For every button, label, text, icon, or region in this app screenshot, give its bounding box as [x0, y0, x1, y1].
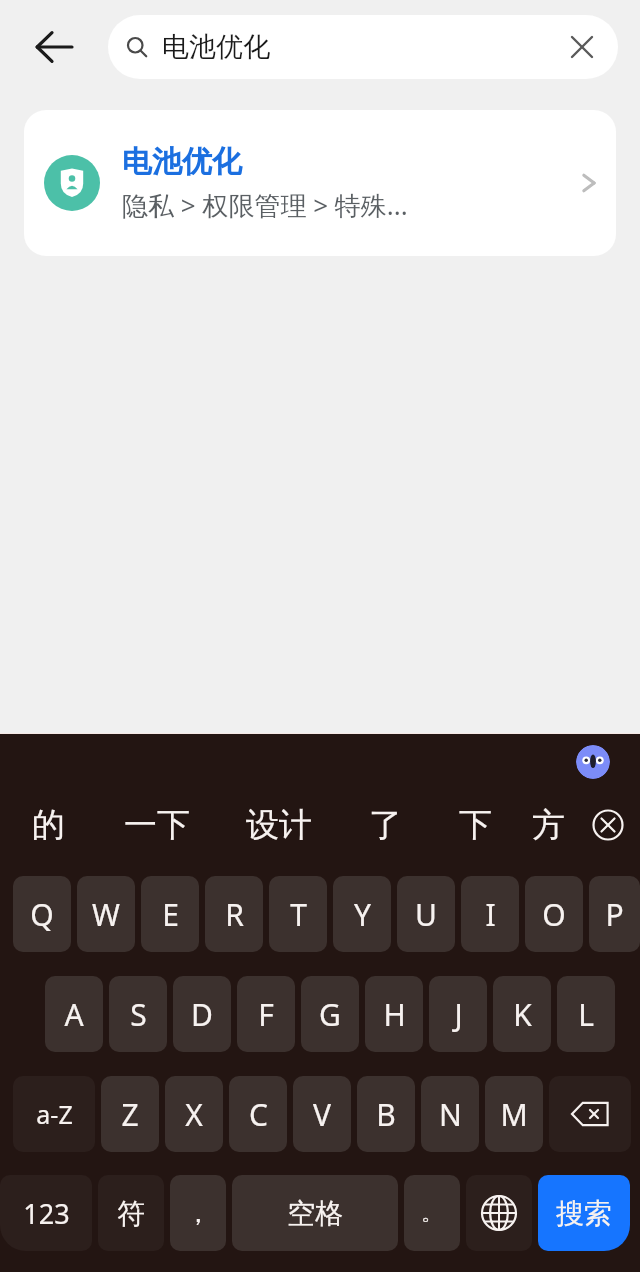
staticText: K	[513, 994, 532, 1035]
button[interactable]: Q	[13, 876, 71, 952]
staticText: 符	[117, 1196, 145, 1231]
staticText: 电池优化	[122, 143, 242, 181]
button[interactable]: a-Z	[13, 1076, 95, 1152]
button[interactable]: 符	[98, 1175, 164, 1251]
staticText: 123	[23, 1195, 70, 1232]
staticText: 设计	[246, 804, 312, 846]
button[interactable]: H	[365, 976, 423, 1052]
staticText: 空格	[287, 1196, 343, 1231]
button[interactable]: J	[429, 976, 487, 1052]
button[interactable]: 空格	[232, 1175, 398, 1251]
staticText: S	[130, 994, 147, 1035]
staticText: 下	[459, 804, 492, 846]
staticText: G	[319, 994, 341, 1035]
button[interactable]: C	[229, 1076, 287, 1152]
staticText: Z	[121, 1094, 139, 1135]
staticText: E	[162, 894, 179, 935]
button[interactable]: T	[269, 876, 327, 952]
staticText: H	[383, 994, 406, 1035]
staticText: 搜索	[556, 1196, 612, 1231]
button[interactable]: O	[525, 876, 583, 952]
button[interactable]: Z	[101, 1076, 159, 1152]
staticText: Q	[30, 894, 54, 935]
button[interactable]: Back	[22, 15, 86, 79]
staticText: a-Z	[36, 1097, 73, 1131]
staticText: X	[185, 1094, 203, 1135]
button[interactable]: 搜索	[538, 1175, 630, 1251]
button[interactable]: 设计	[218, 786, 340, 864]
button[interactable]: Switch language	[466, 1175, 532, 1251]
staticText: N	[439, 1094, 462, 1135]
button[interactable]: R	[205, 876, 263, 952]
button[interactable]: 123	[0, 1175, 92, 1251]
staticText: 电池优化	[162, 30, 554, 64]
button[interactable]: ，	[170, 1175, 226, 1251]
button[interactable]: P	[589, 876, 640, 952]
staticText: 隐私 > 权限管理 > 特殊...	[122, 187, 408, 223]
staticText: C	[249, 1094, 268, 1135]
button[interactable]: Clear	[554, 19, 610, 75]
button[interactable]: 方	[520, 786, 576, 864]
staticText: 的	[32, 804, 65, 846]
button[interactable]: Y	[333, 876, 391, 952]
button[interactable]: M	[485, 1076, 543, 1152]
button[interactable]: D	[173, 976, 231, 1052]
staticText: V	[313, 1094, 331, 1135]
button[interactable]: Input method avatar	[576, 745, 610, 779]
button[interactable]: N	[421, 1076, 479, 1152]
staticText: M	[500, 1094, 528, 1135]
button[interactable]: V	[293, 1076, 351, 1152]
staticText: W	[92, 894, 120, 935]
staticText: U	[415, 894, 437, 935]
staticText: 一下	[124, 804, 190, 846]
button[interactable]: Backspace	[549, 1076, 631, 1152]
button[interactable]: 。	[404, 1175, 460, 1251]
staticText: F	[258, 994, 274, 1035]
button[interactable]: U	[397, 876, 455, 952]
staticText: ，	[185, 1197, 211, 1230]
button[interactable]: 电池优化	[24, 110, 616, 256]
staticText: A	[64, 994, 84, 1035]
staticText: O	[542, 894, 566, 935]
button[interactable]: 一下	[96, 786, 218, 864]
button[interactable]: F	[237, 976, 295, 1052]
button[interactable]: L	[557, 976, 615, 1052]
staticText: B	[376, 1094, 396, 1135]
button[interactable]: Close candidates	[576, 786, 640, 864]
button[interactable]: K	[493, 976, 551, 1052]
button[interactable]: X	[165, 1076, 223, 1152]
button[interactable]: 的	[0, 786, 96, 864]
button[interactable]: S	[109, 976, 167, 1052]
button[interactable]: 下	[430, 786, 520, 864]
staticText: P	[605, 894, 624, 935]
staticText: 了	[369, 804, 402, 846]
button[interactable]: A	[45, 976, 103, 1052]
staticText: T	[290, 894, 307, 935]
staticText: L	[578, 994, 594, 1035]
button[interactable]: W	[77, 876, 135, 952]
staticText: R	[225, 894, 244, 935]
button[interactable]: 电池优化	[108, 15, 618, 79]
button[interactable]: 了	[340, 786, 430, 864]
button[interactable]: E	[141, 876, 199, 952]
staticText: J	[454, 994, 463, 1035]
staticText: 方	[532, 804, 565, 846]
staticText: D	[191, 994, 213, 1035]
button[interactable]: G	[301, 976, 359, 1052]
button[interactable]: B	[357, 1076, 415, 1152]
staticText: 。	[421, 1199, 443, 1227]
staticText: I	[485, 894, 496, 935]
staticText: Y	[354, 894, 371, 935]
button[interactable]: I	[461, 876, 519, 952]
